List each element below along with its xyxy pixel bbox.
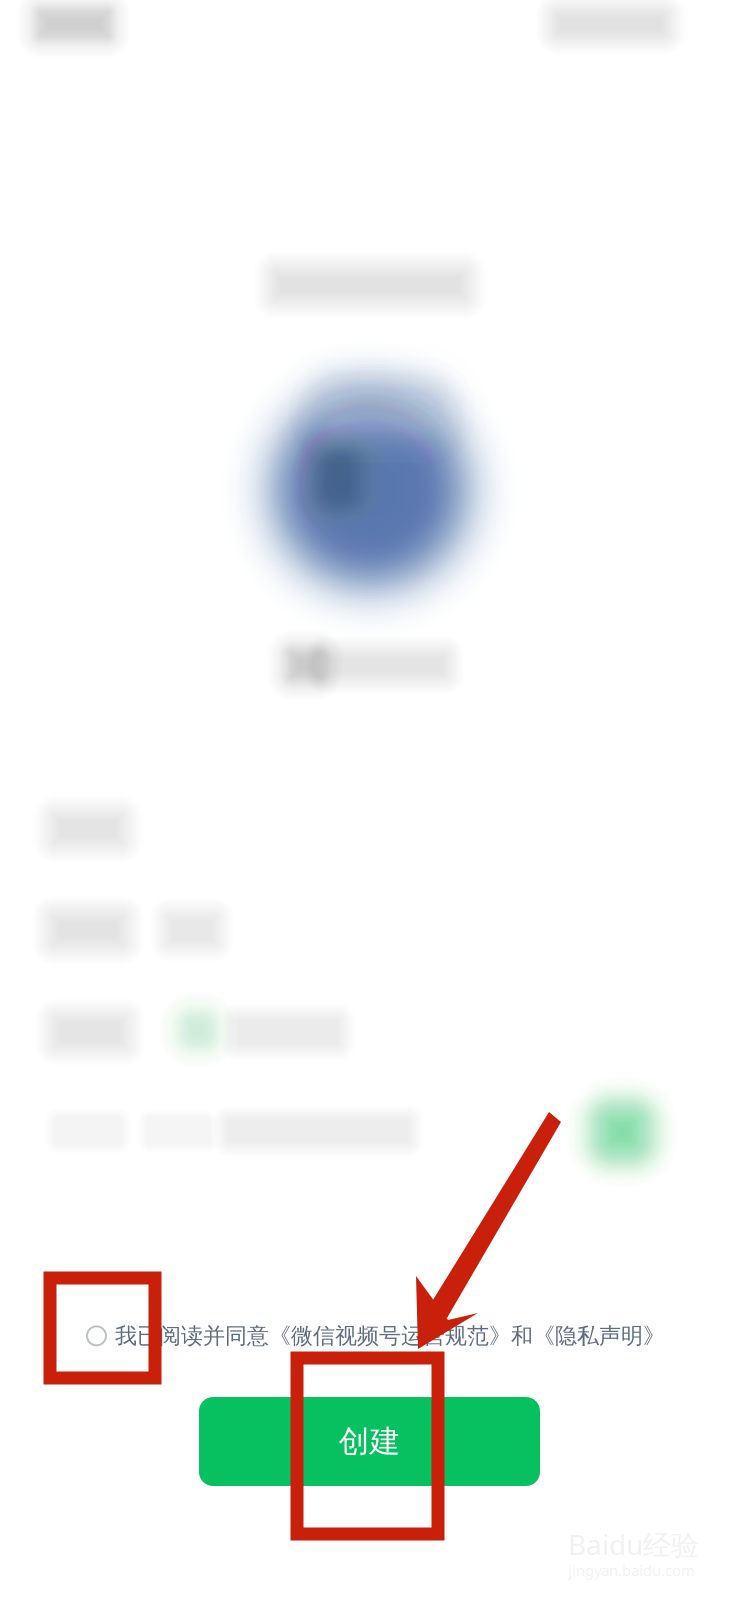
button[interactable]: 我已阅读并同意《微信视频号运营规范》和《隐私声明》 <box>83 1314 669 1358</box>
button[interactable]: 创建 <box>199 1397 540 1486</box>
staticText: Baidu经验 <box>568 1525 699 1563</box>
staticText: 创建 <box>338 1422 400 1461</box>
staticText: jingyan.baidu.com <box>568 1560 695 1580</box>
staticText: 我已阅读并同意《微信视频号运营规范》和《隐私声明》 <box>115 1322 665 1350</box>
